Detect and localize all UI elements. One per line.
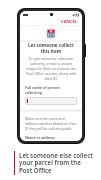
staticText: Let someone collect this item [25, 42, 77, 54]
button[interactable]: CANCEL [60, 18, 79, 25]
staticText: Name or address [25, 135, 55, 140]
staticText: Full name of person collecting [25, 85, 77, 95]
button[interactable] [25, 97, 77, 105]
staticText: CANCEL [61, 19, 78, 24]
staticText: Make sure the name and address matches d… [25, 116, 77, 131]
other: Post Office logo [45, 27, 57, 39]
staticText: Let someone else collect your parcel fro… [19, 151, 94, 175]
staticText: To give someone collection authority, cr… [25, 56, 77, 81]
